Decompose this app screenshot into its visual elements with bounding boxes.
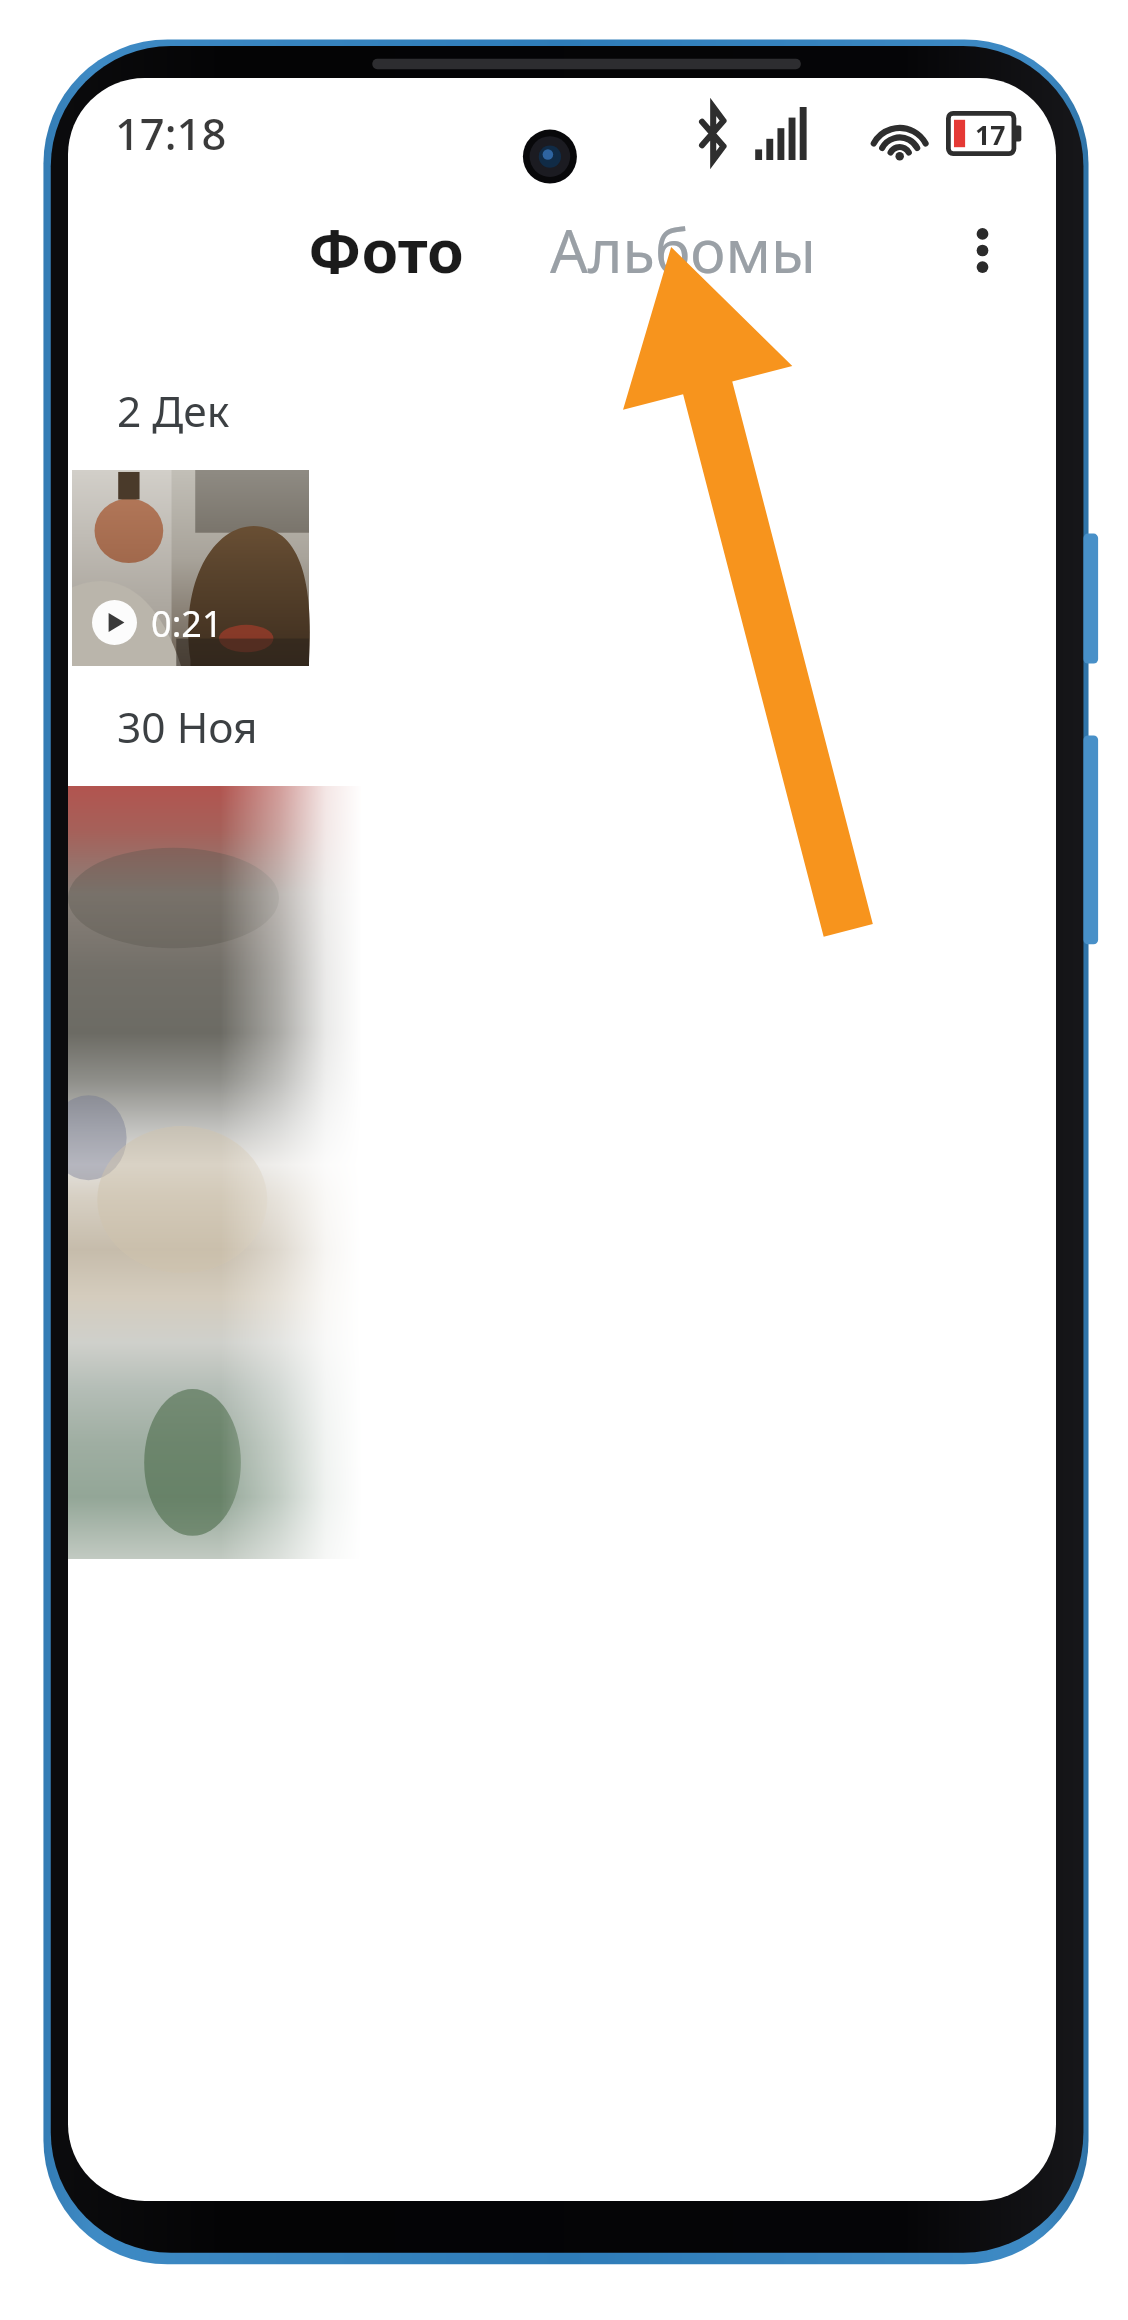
staticText: Фото bbox=[308, 210, 464, 291]
button[interactable] bbox=[68, 786, 361, 1559]
staticText: 30 Ноя bbox=[117, 698, 258, 756]
button[interactable]: Фото bbox=[280, 195, 492, 306]
staticText: 17:18 bbox=[115, 104, 227, 163]
staticText: 17 bbox=[975, 116, 1006, 152]
staticText: 2 Дек bbox=[117, 382, 230, 440]
staticText: Альбомы bbox=[550, 210, 817, 291]
button[interactable]: 0:21 bbox=[72, 470, 309, 666]
button[interactable]: Альбомы bbox=[522, 195, 845, 306]
button[interactable]: More options bbox=[930, 198, 1034, 302]
staticText: 0:21 bbox=[151, 598, 223, 647]
